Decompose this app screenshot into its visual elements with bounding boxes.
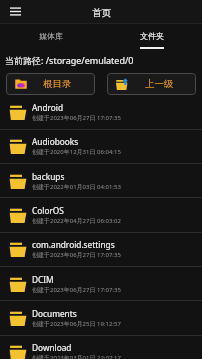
staticText: 文件夹 (140, 31, 164, 41)
staticText: 上一级 (145, 78, 174, 90)
button[interactable]: 文件夹 (101, 24, 202, 49)
staticText: 创建于2023年06月27日 17:07:35 (32, 251, 121, 259)
staticText: 当前路径: /storage/emulated/0 (5, 54, 134, 66)
staticText: Documents (32, 308, 77, 319)
staticText: 创建于2020年12月31日 06:04:15 (32, 148, 121, 156)
button[interactable]: DCIM (0, 267, 202, 301)
staticText: 创建于2022年01月03日 04:01:53 (32, 183, 121, 191)
button[interactable]: com.android.settings (0, 232, 202, 266)
button[interactable]: Download (0, 335, 202, 359)
staticText: ColorOS (32, 205, 64, 216)
staticText: 创建于2023年06月27日 17:07:35 (32, 286, 121, 294)
staticText: 首页 (92, 7, 111, 19)
button[interactable]: Audiobooks (0, 129, 202, 163)
staticText: 媒体库 (39, 31, 63, 41)
button[interactable]: 上一级 (107, 73, 196, 95)
staticText: 创建于2023年03月01日 22:07:17 (32, 354, 121, 359)
button[interactable]: 根目录 (6, 73, 95, 95)
button[interactable]: backups (0, 164, 202, 198)
staticText: 根目录 (43, 78, 72, 90)
staticText: Download (32, 342, 72, 353)
button[interactable]: ColorOS (0, 198, 202, 232)
staticText: Android (32, 102, 64, 113)
staticText: 创建于2023年06月27日 17:07:35 (32, 114, 121, 122)
staticText: 创建于2023年06月25日 19:12:57 (32, 320, 121, 328)
staticText: 创建于2022年04月27日 06:03:02 (32, 217, 121, 225)
button[interactable]: Menu (9, 5, 22, 18)
staticText: DCIM (32, 274, 54, 285)
button[interactable]: 媒体库 (0, 24, 101, 49)
staticText: com.android.settings (32, 239, 115, 250)
staticText: backups (32, 171, 65, 182)
staticText: Audiobooks (32, 136, 79, 147)
button[interactable]: Android (0, 95, 202, 129)
button[interactable]: Documents (0, 301, 202, 335)
